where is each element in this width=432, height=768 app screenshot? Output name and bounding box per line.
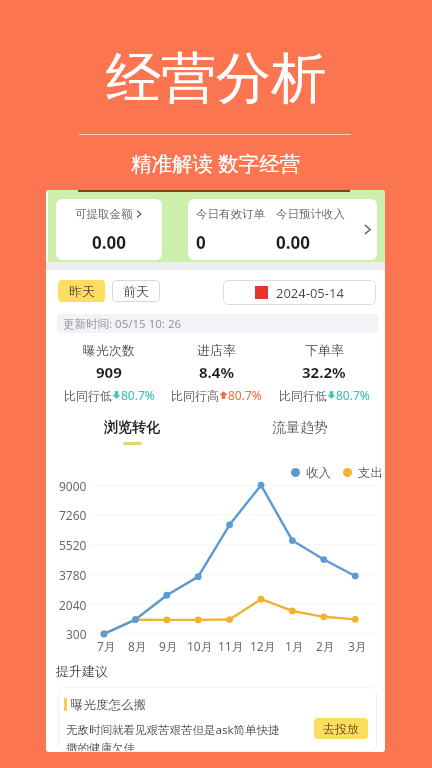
staticText: 曝光次数 — [83, 342, 135, 358]
staticText: 7260 — [59, 507, 87, 523]
staticText: 昨天 — [69, 283, 95, 299]
staticText: 9000 — [59, 478, 87, 494]
staticText: 2月 — [316, 638, 335, 654]
staticText: 更新时间: 05/15 10: 26 — [63, 316, 182, 332]
staticText: 去投放 — [323, 721, 359, 736]
staticText: 12月 — [250, 638, 276, 654]
button[interactable]: 曝光次数 — [55, 342, 163, 403]
staticText: 32.2% — [302, 362, 346, 382]
staticText: 下单率 — [305, 342, 344, 358]
staticText: 提升建议 — [56, 663, 108, 679]
staticText: 曝光度怎么搬 — [71, 697, 146, 713]
button[interactable]: 下单率 — [270, 342, 378, 403]
button[interactable]: 流量趋势 — [272, 419, 328, 437]
staticText: 10月 — [187, 638, 213, 654]
button[interactable]: 昨天 — [58, 280, 105, 302]
staticText: 80.7% — [336, 387, 370, 403]
staticText: 0.00 — [276, 231, 310, 254]
staticText: 前天 — [123, 283, 149, 299]
staticText: 流量趋势 — [272, 419, 328, 437]
staticText: 比同行低 — [279, 388, 327, 403]
button[interactable]: 前天 — [112, 280, 160, 302]
staticText: 80.7% — [121, 387, 155, 403]
staticText: 909 — [96, 362, 122, 382]
button[interactable]: 曝光度怎么搬 — [58, 687, 377, 752]
other: 查看详情 — [358, 199, 377, 260]
staticText: 1月 — [285, 638, 304, 654]
staticText: 8.4% — [199, 362, 234, 382]
staticText: 精准解读 数字经营 — [131, 149, 301, 177]
staticText: 经营分析 — [106, 44, 326, 113]
staticText: 可提取金额 — [75, 207, 133, 221]
staticText: 80.7% — [228, 387, 262, 403]
staticText: 5520 — [59, 537, 87, 553]
staticText: 300 — [66, 626, 87, 642]
button[interactable]: 浏览转化 — [104, 419, 160, 445]
staticText: 8月 — [128, 638, 147, 654]
button[interactable]: 进店率 — [162, 342, 270, 403]
staticText: 进店率 — [197, 342, 236, 358]
button[interactable]: 2024-05-14 — [223, 280, 376, 305]
staticText: 0 — [196, 231, 206, 254]
staticText: 比同行低 — [64, 388, 112, 403]
staticText: 11月 — [218, 638, 244, 654]
staticText: 支出 — [358, 465, 383, 479]
staticText: 0.00 — [92, 231, 126, 254]
button[interactable]: 可提取金额 — [56, 199, 162, 260]
staticText: 3780 — [59, 567, 87, 583]
staticText: 今日预计收入 — [276, 207, 345, 221]
button[interactable]: 去投放 — [314, 718, 368, 739]
staticText: 2040 — [59, 597, 87, 613]
button[interactable]: 今日有效订单 — [188, 199, 377, 260]
staticText: 7月 — [97, 638, 116, 654]
staticText: 收入 — [306, 465, 331, 479]
staticText: 9月 — [159, 638, 178, 654]
staticText: 3月 — [348, 638, 367, 654]
staticText: 浏览转化 — [104, 419, 160, 437]
staticText: 2024-05-14 — [276, 284, 344, 302]
staticText: 今日有效订单 — [196, 207, 265, 221]
staticText: 比同行高 — [171, 388, 219, 403]
staticText: 无敌时间就看见艰苦艰苦但是ask简单快捷撒的健康欠佳 — [66, 722, 282, 752]
